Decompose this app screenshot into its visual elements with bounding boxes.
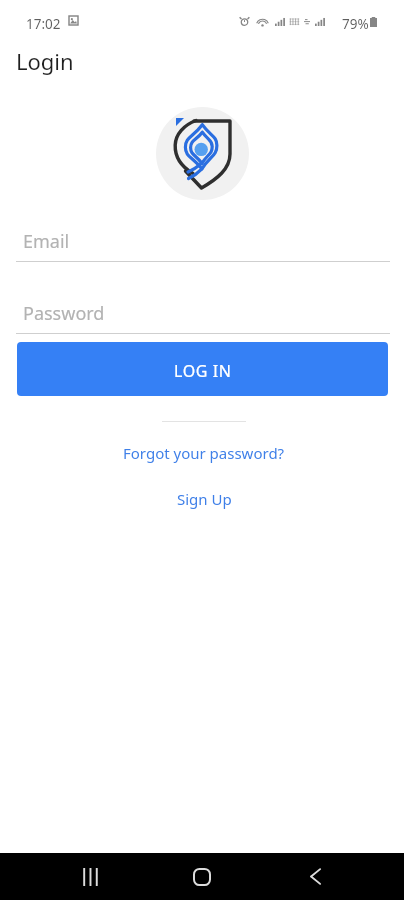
button[interactable]: LOG IN	[17, 342, 388, 396]
staticText: Email	[23, 229, 70, 254]
button[interactable]: Recent apps	[65, 853, 113, 900]
staticText: 17:02	[26, 15, 61, 33]
button[interactable]: Forgot your password?	[2, 440, 404, 466]
staticText: Password	[23, 301, 105, 326]
button[interactable]: Back	[291, 853, 339, 900]
staticText: Forgot your password?	[123, 443, 285, 463]
staticText: Sign Up	[177, 489, 232, 509]
button[interactable]: Sign Up	[2, 486, 404, 512]
staticText: Login	[16, 46, 74, 76]
staticText: LOG IN	[174, 360, 232, 382]
staticText: 79%	[342, 15, 369, 33]
button[interactable]: Home	[178, 853, 226, 900]
